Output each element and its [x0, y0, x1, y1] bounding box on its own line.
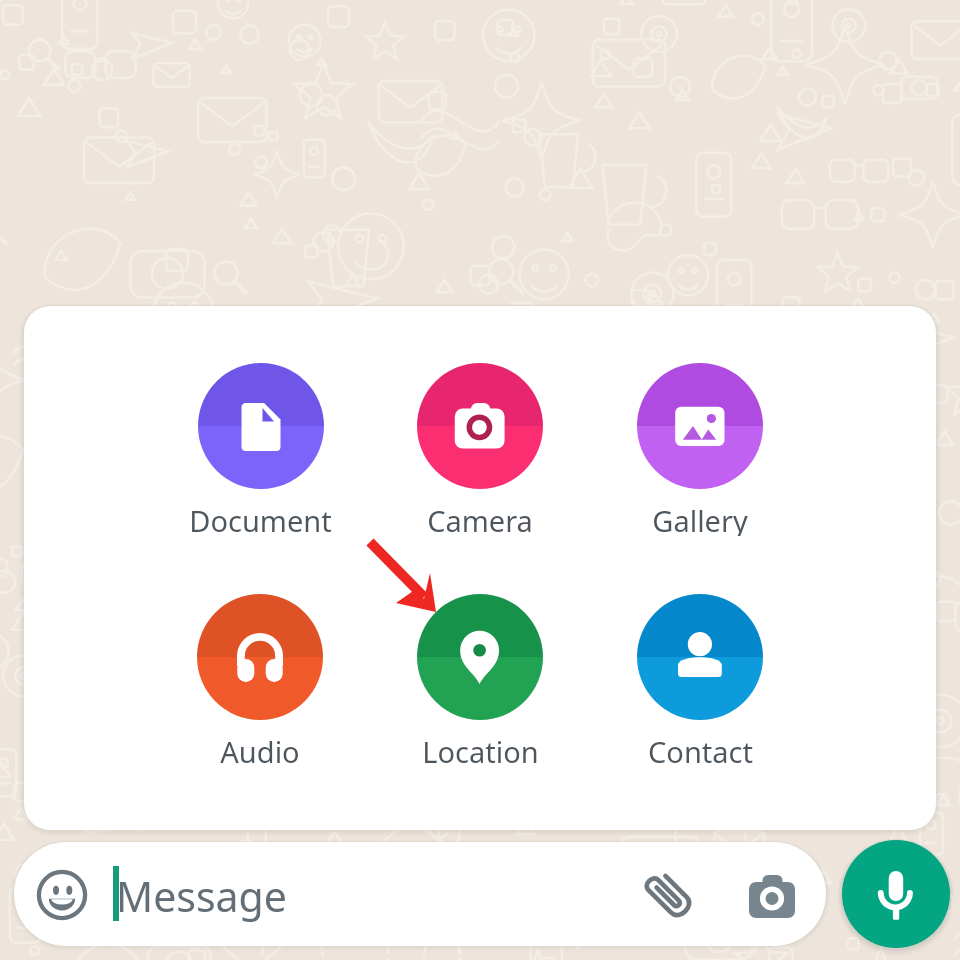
button[interactable]: Contact — [612, 587, 788, 767]
staticText: Camera — [427, 501, 533, 536]
button[interactable]: Document — [172, 356, 348, 536]
button[interactable]: Audio — [172, 587, 348, 767]
button[interactable]: Voice message — [842, 840, 950, 948]
button[interactable]: Gallery — [612, 356, 788, 536]
button[interactable]: Attach — [635, 861, 703, 929]
staticText: Contact — [648, 732, 753, 767]
staticText: Gallery — [652, 501, 748, 536]
button[interactable]: Location — [392, 587, 568, 767]
staticText: Message — [116, 868, 287, 924]
button[interactable]: Emoji — [34, 867, 90, 923]
button[interactable]: Camera — [392, 356, 568, 536]
button[interactable] — [14, 842, 826, 946]
staticText: Audio — [220, 732, 300, 767]
staticText: Document — [189, 501, 332, 536]
button[interactable]: Camera — [740, 862, 804, 926]
staticText: Location — [422, 732, 539, 767]
